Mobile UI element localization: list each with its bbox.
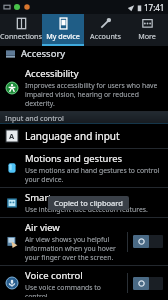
staticText: Accessory: [21, 47, 66, 60]
staticText: Smart screen: [25, 191, 84, 204]
staticText: dexterity.: [25, 99, 55, 108]
staticText: Use intelligent face detection features.: [25, 205, 148, 214]
button[interactable]: Air view: [0, 218, 168, 266]
button[interactable]: Voice control: [0, 266, 168, 300]
button[interactable]: Toggle: [133, 277, 163, 290]
staticText: Motions and gestures: [25, 152, 123, 165]
button[interactable]: Accounts: [84, 14, 126, 46]
staticText: Use voice commands to control: [25, 283, 125, 297]
staticText: Connections: [0, 31, 42, 41]
staticText: 17:41: [144, 2, 165, 13]
staticText: Air view: [25, 221, 60, 234]
staticText: impaired vision, hearing or reduced: [25, 90, 139, 99]
staticText: Voice control: [25, 269, 83, 282]
button[interactable]: Accessibility: [0, 64, 168, 112]
staticText: More: [138, 31, 156, 41]
button[interactable]: Smart screen: [0, 188, 168, 218]
staticText: Accounts: [90, 31, 121, 41]
staticText: information when you hover: [25, 244, 116, 253]
staticText: Copied to clipboard: [54, 198, 123, 208]
button[interactable]: A: [0, 124, 168, 149]
staticText: your finger over the screen.: [25, 253, 114, 262]
staticText: Improves accessibility for users who hav…: [25, 81, 158, 90]
button[interactable]: Motions and gestures: [0, 149, 168, 188]
button[interactable]: More: [126, 14, 168, 46]
staticText: your device.: [25, 175, 64, 184]
staticText: Language and input: [25, 129, 120, 143]
staticText: Air view shows you helpful: [25, 235, 110, 244]
staticText: Accessibility: [25, 67, 79, 80]
button[interactable]: My device: [42, 14, 84, 46]
staticText: Use motions and hand gestures to control: [25, 166, 160, 175]
staticText: A: [9, 131, 15, 141]
button[interactable]: Toggle: [133, 235, 163, 248]
staticText: Input and control: [5, 113, 64, 123]
staticText: My device: [46, 31, 80, 41]
button[interactable]: Connections: [0, 14, 42, 46]
